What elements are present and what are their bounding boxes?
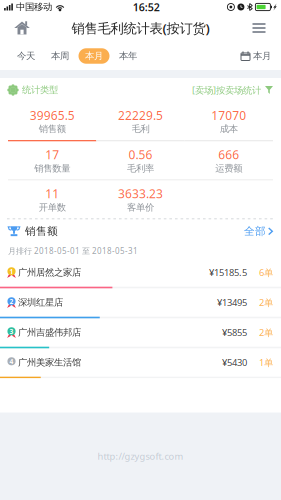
- staticText: 全部: [244, 225, 266, 238]
- button[interactable]: 1: [0, 258, 281, 288]
- staticText: 毛利: [131, 123, 149, 135]
- staticText: 3: [9, 327, 13, 336]
- button[interactable]: 39965.5: [8, 102, 96, 140]
- staticText: 3633.23: [118, 186, 163, 201]
- staticText: 深圳红星店: [18, 297, 63, 308]
- staticText: 1单: [259, 356, 273, 369]
- staticText: 2单: [259, 326, 273, 339]
- staticText: 2: [9, 297, 13, 306]
- button[interactable]: 3: [0, 318, 281, 348]
- staticText: 中国移动: [16, 1, 52, 13]
- staticText: http://gzygsoft.com: [97, 450, 183, 462]
- staticText: 本年: [119, 50, 137, 62]
- staticText: 广州居然之家店: [18, 267, 81, 278]
- staticText: 16:52: [133, 0, 160, 14]
- staticText: 0.56: [128, 147, 152, 162]
- button[interactable]: 本月: [235, 42, 277, 70]
- staticText: ¥5430: [222, 356, 247, 369]
- button[interactable]: Menu: [237, 14, 281, 42]
- button[interactable]: Home: [0, 14, 44, 42]
- button[interactable]: 2: [0, 288, 281, 318]
- staticText: 2单: [259, 296, 273, 309]
- staticText: 17070: [211, 107, 246, 123]
- button[interactable]: 本周: [43, 42, 77, 70]
- staticText: 39965.5: [30, 107, 75, 123]
- button[interactable]: 统计类型: [8, 84, 58, 96]
- button[interactable]: 今天: [9, 42, 43, 70]
- staticText: 销售数量: [34, 162, 70, 174]
- staticText: 月排行 2018-05-01 至 2018-05-31: [8, 245, 138, 256]
- staticText: 成本: [220, 123, 238, 135]
- staticText: 客单价: [127, 201, 154, 213]
- staticText: 销售额: [39, 123, 66, 135]
- button[interactable]: 0.56: [96, 141, 185, 179]
- button[interactable]: 4: [0, 348, 281, 378]
- button[interactable]: 全部: [224, 219, 273, 243]
- staticText: 666: [218, 147, 239, 162]
- staticText: 1: [9, 267, 13, 276]
- staticText: 本周: [51, 50, 69, 62]
- staticText: 今天: [17, 50, 35, 62]
- staticText: 销售额: [25, 225, 58, 238]
- staticText: ¥13495: [217, 296, 247, 309]
- button[interactable]: 3633.23: [96, 180, 185, 218]
- button[interactable]: 11: [8, 180, 96, 218]
- staticText: 本月: [85, 50, 103, 62]
- button[interactable]: 666: [185, 141, 273, 179]
- staticText: 开单数: [39, 201, 66, 213]
- staticText: 广州吉盛伟邦店: [18, 327, 81, 338]
- button[interactable]: 17: [8, 141, 96, 179]
- staticText: 统计类型: [22, 84, 58, 96]
- staticText: 22229.5: [118, 107, 163, 123]
- staticText: 运费额: [215, 162, 242, 174]
- staticText: 本月: [253, 50, 271, 62]
- button[interactable]: [卖场]按卖场统计: [192, 84, 273, 96]
- staticText: 4: [9, 357, 13, 366]
- staticText: 11: [45, 186, 59, 201]
- staticText: 毛利率: [127, 162, 154, 174]
- button[interactable]: 17070: [185, 102, 273, 140]
- staticText: ¥15185.5: [209, 266, 247, 279]
- staticText: 17: [45, 147, 59, 162]
- staticText: 销售毛利统计表(按订货): [71, 19, 209, 37]
- button[interactable]: 本月: [77, 42, 111, 70]
- staticText: 6单: [259, 266, 273, 279]
- staticText: ¥5855: [222, 326, 247, 339]
- staticText: 广州美家生活馆: [18, 357, 81, 368]
- staticText: [卖场]按卖场统计: [192, 84, 261, 96]
- button[interactable]: 本年: [111, 42, 145, 70]
- button[interactable]: 22229.5: [96, 102, 185, 140]
